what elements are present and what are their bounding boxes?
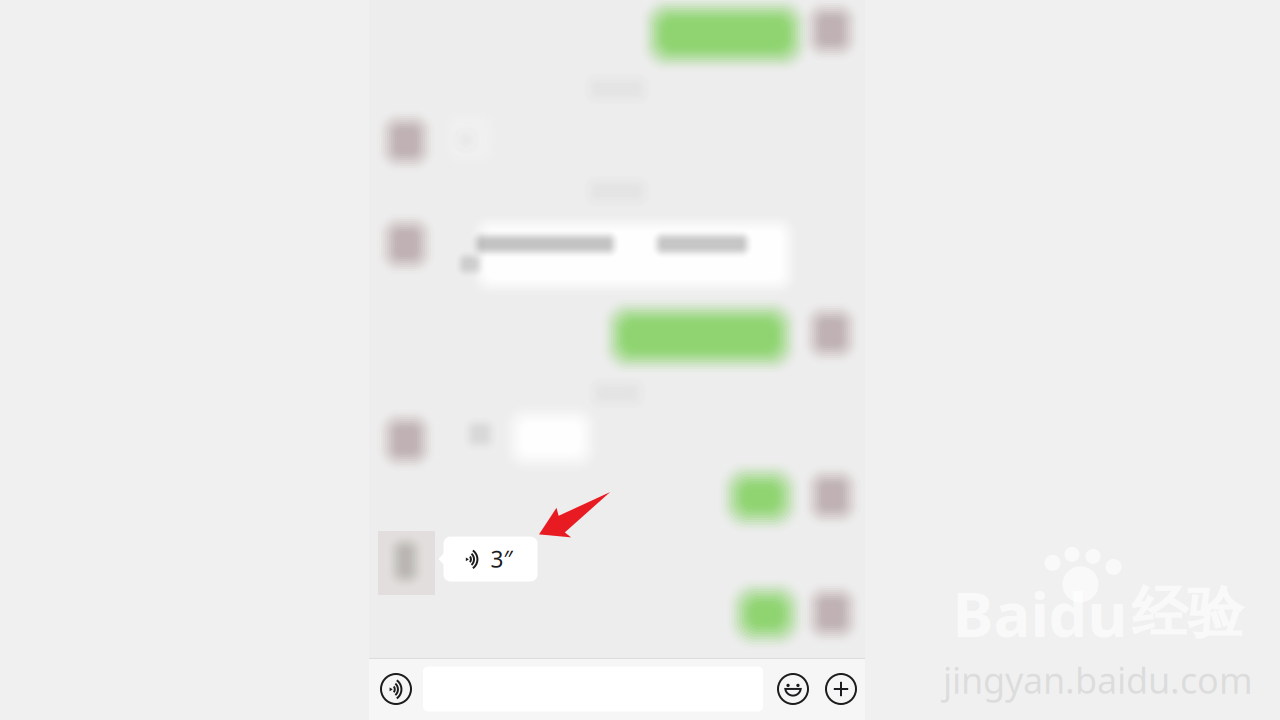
staticText: 经验 (1131, 579, 1243, 647)
staticText: jingyan.baidu.com (943, 656, 1253, 704)
button[interactable]: Emoji (769, 658, 817, 720)
staticText: 3″ (490, 544, 512, 574)
button[interactable]: 3″ (438, 536, 537, 581)
staticText: Baidu (952, 572, 1127, 654)
button[interactable]: Voice input (369, 658, 423, 720)
button[interactable]: More (817, 658, 865, 720)
